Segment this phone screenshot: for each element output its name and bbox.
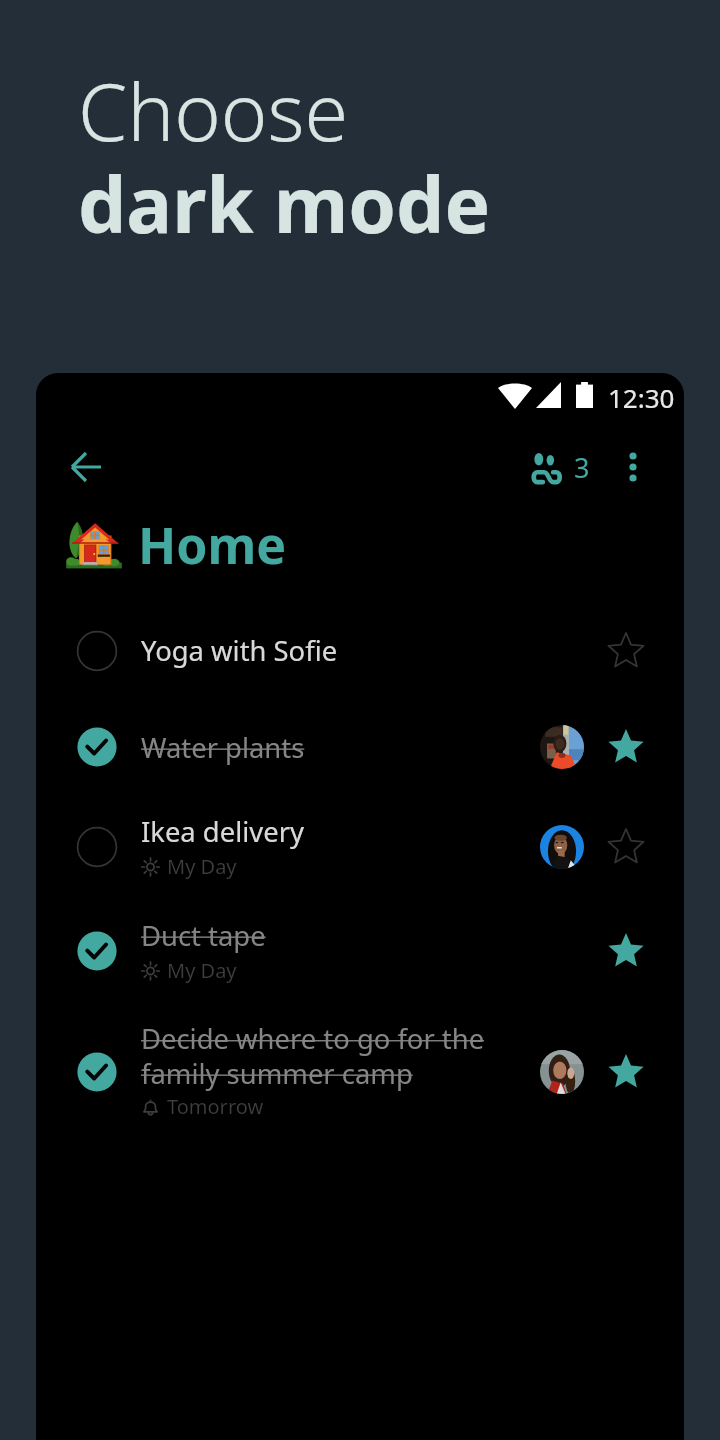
staticText: Water plants	[141, 729, 305, 766]
staticText: Home	[138, 511, 287, 579]
staticText: My Day	[167, 957, 237, 984]
button[interactable]: Mark as not completed	[75, 1050, 119, 1094]
staticText: 12:30	[608, 380, 675, 415]
staticText: Yoga with Sofie	[141, 632, 338, 669]
staticText: My Day	[167, 853, 237, 880]
button[interactable]: Shared with 3 people	[526, 443, 596, 492]
button[interactable]: Mark as not completed	[36, 1020, 684, 1124]
button[interactable]: Mark as important	[604, 629, 648, 673]
button[interactable]: Navigate back	[56, 443, 104, 491]
staticText: 3	[574, 449, 590, 486]
staticText: Ikea delivery	[141, 813, 304, 850]
button[interactable]: Mark as not completed	[75, 929, 119, 973]
button[interactable]: Mark as not completed	[75, 725, 119, 769]
staticText: Tomorrow	[167, 1093, 264, 1120]
button[interactable]: Mark as not completed	[36, 905, 684, 997]
button[interactable]: Remove from important	[604, 1050, 648, 1094]
staticText: Choose	[78, 57, 349, 165]
button[interactable]: More options	[611, 445, 655, 489]
button[interactable]: Mark as completed	[36, 801, 684, 893]
button[interactable]: Mark as not completed	[36, 701, 684, 793]
button[interactable]: Remove from important	[604, 725, 648, 769]
staticText: dark mode	[78, 151, 491, 255]
button[interactable]: Mark as completed	[36, 605, 684, 697]
button[interactable]: Mark as completed	[75, 629, 119, 673]
staticText: Duct tape	[141, 917, 266, 954]
button[interactable]: Mark as completed	[75, 825, 119, 869]
button[interactable]: Mark as important	[604, 825, 648, 869]
button[interactable]: Remove from important	[604, 929, 648, 973]
staticText: Decide where to go for the family summer…	[141, 1020, 485, 1092]
